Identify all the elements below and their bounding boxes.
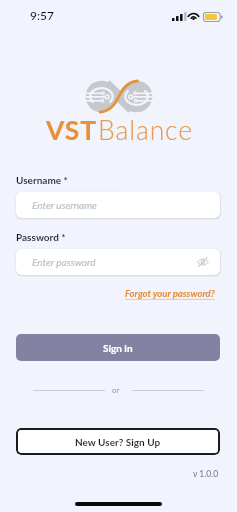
button[interactable]: Forgot your password? [125, 288, 215, 299]
staticText: Balance [98, 114, 193, 146]
button[interactable]: Enter password [16, 249, 220, 275]
staticText: Username * [16, 174, 68, 186]
button[interactable]: Sign in [16, 334, 220, 361]
staticText: Forgot your password? [125, 288, 215, 299]
staticText: 9:57 [30, 8, 54, 22]
staticText: New User? Sign Up [75, 436, 161, 448]
staticText: VST [46, 114, 98, 146]
staticText: Password * [16, 231, 66, 243]
staticText: v 1.0.0 [193, 469, 219, 479]
staticText: or [112, 385, 120, 395]
staticText: Enter password [32, 256, 96, 268]
staticText: Sign in [103, 342, 133, 354]
button[interactable]: Show password [196, 255, 210, 269]
button[interactable]: New User? Sign Up [16, 428, 220, 455]
staticText: Enter username [32, 199, 97, 211]
button[interactable]: Enter username [16, 192, 220, 218]
